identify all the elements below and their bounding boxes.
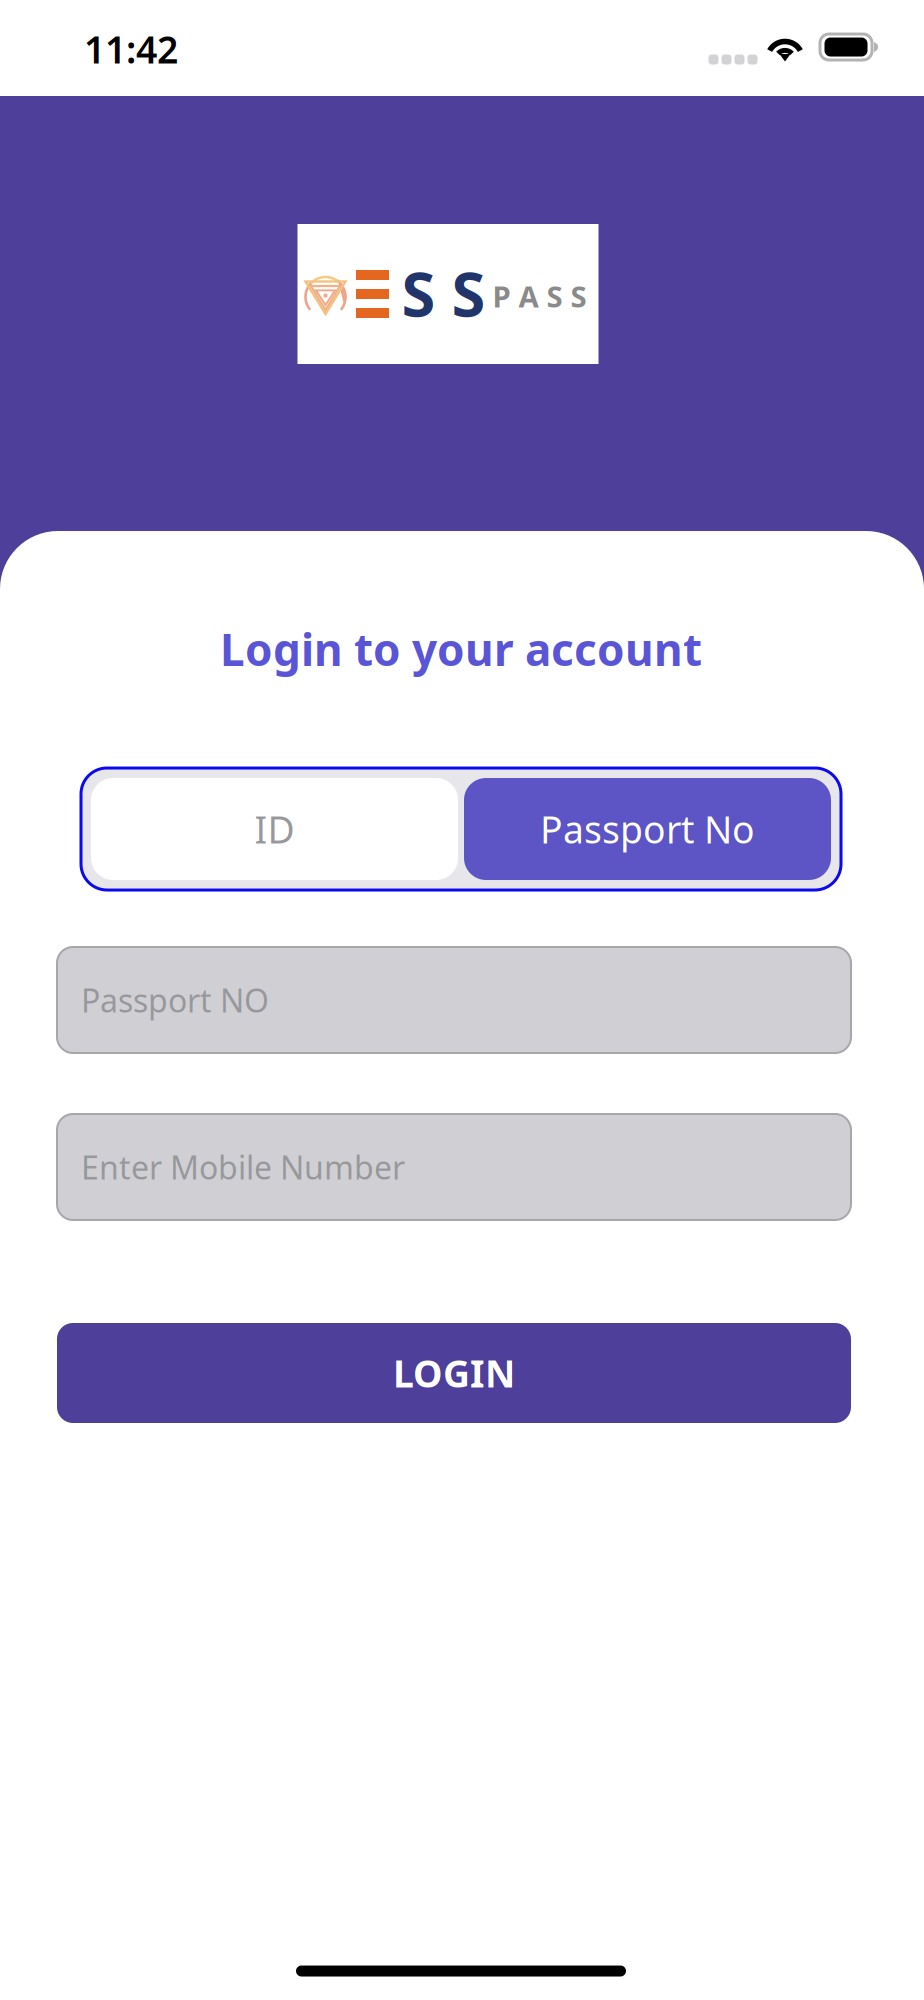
staticText: ID: [254, 804, 294, 854]
button[interactable]: Passport NO: [57, 947, 851, 1053]
staticText: Passport No: [540, 804, 755, 854]
staticText: 11:42: [84, 24, 178, 74]
staticText: Passport NO: [81, 979, 269, 1021]
staticText: Enter Mobile Number: [81, 1146, 405, 1188]
button[interactable]: LOGIN: [57, 1323, 851, 1423]
staticText: P A S S: [492, 276, 586, 315]
staticText: LOGIN: [393, 1348, 515, 1398]
button[interactable]: Passport No: [464, 778, 831, 880]
staticText: Login to your account: [220, 620, 702, 678]
button[interactable]: Enter Mobile Number: [57, 1114, 851, 1220]
staticText: S S: [401, 252, 485, 334]
button[interactable]: ID: [91, 778, 458, 880]
